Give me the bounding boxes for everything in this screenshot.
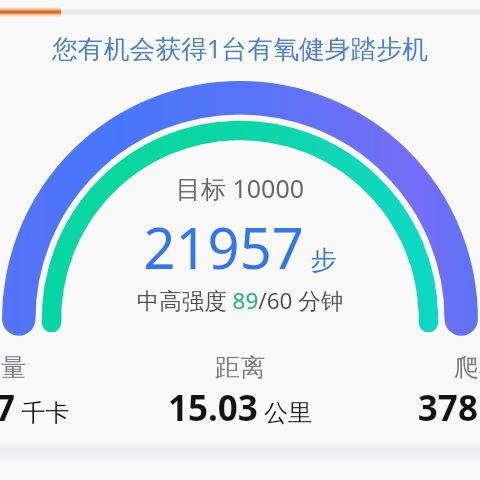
staticText: 378 层	[303, 384, 480, 432]
button[interactable]: 热量	[0, 352, 161, 383]
button[interactable]: 1287 千卡	[0, 384, 162, 432]
button[interactable]: 爬楼	[319, 352, 480, 383]
staticText: 21957 步	[0, 209, 480, 285]
staticText: 爬楼	[319, 352, 480, 383]
staticText: 中高强度 89/60 分钟	[0, 285, 480, 316]
staticText: 15.03 公里	[80, 384, 400, 432]
button[interactable]	[0, 7, 61, 17]
staticText: 热量	[0, 352, 161, 383]
staticText: 您有机会获得1台有氧健身踏步机	[0, 30, 480, 65]
button[interactable]: 378 层	[303, 384, 480, 432]
button[interactable]: 距离	[80, 352, 400, 383]
staticText: 目标 10000	[0, 171, 480, 205]
button[interactable]: 15.03 公里	[80, 384, 400, 432]
button[interactable]: 您有机会获得1台有氧健身踏步机	[0, 30, 480, 65]
staticText: 距离	[80, 352, 400, 383]
staticText: 1287 千卡	[0, 384, 162, 432]
